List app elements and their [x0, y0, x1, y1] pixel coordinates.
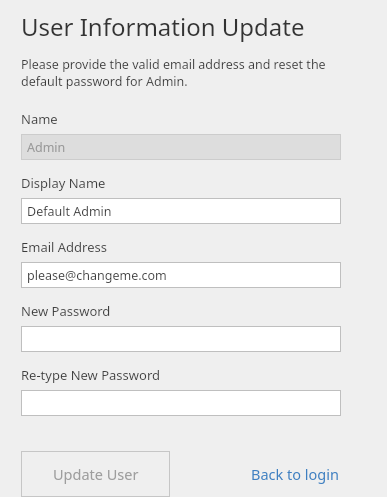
button[interactable]: Back to login — [249, 462, 341, 486]
staticText: please@changeme.com — [27, 267, 167, 284]
button[interactable] — [21, 326, 341, 352]
button[interactable] — [21, 390, 341, 416]
staticText: New Password — [21, 302, 111, 320]
staticText: Re-type New Password — [21, 366, 160, 384]
button[interactable]: Default Admin — [21, 198, 341, 224]
staticText: Default Admin — [27, 203, 112, 220]
staticText: Admin — [27, 139, 66, 156]
button[interactable]: Admin — [21, 134, 341, 160]
staticText: Name — [21, 110, 58, 128]
button[interactable]: please@changeme.com — [21, 262, 341, 288]
staticText: Please provide the valid email address a… — [21, 56, 341, 89]
staticText: Back to login — [251, 464, 339, 484]
staticText: Display Name — [21, 174, 106, 192]
staticText: User Information Update — [21, 10, 305, 43]
staticText: Update User — [53, 464, 139, 484]
staticText: Email Address — [21, 238, 107, 256]
button[interactable]: Update User — [21, 451, 170, 497]
